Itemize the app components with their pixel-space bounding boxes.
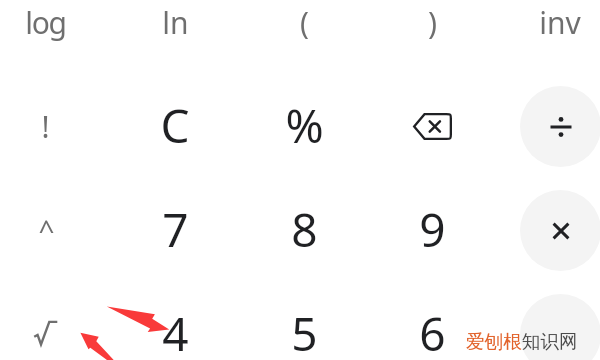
button[interactable]: ln — [111, 0, 239, 74]
staticText: C — [160, 94, 190, 157]
button[interactable]: Divide — [520, 86, 600, 167]
button[interactable]: 5 — [240, 281, 368, 360]
staticText: 爱刨根知识网 — [466, 330, 578, 353]
staticText: 5 — [291, 302, 318, 360]
button[interactable]: 6 — [368, 281, 496, 360]
button[interactable]: ^ — [0, 177, 110, 281]
staticText: ^ — [38, 210, 55, 248]
staticText: 6 — [419, 302, 446, 360]
button[interactable]: Square root — [0, 282, 109, 360]
staticText: ln — [162, 2, 189, 43]
button[interactable]: 8 — [240, 177, 368, 281]
button[interactable]: log — [0, 0, 109, 74]
staticText: % — [285, 94, 324, 157]
button[interactable]: Multiply — [520, 190, 600, 271]
staticText: ! — [41, 106, 50, 147]
button[interactable]: inv — [496, 0, 600, 74]
staticText: 4 — [162, 302, 189, 360]
button[interactable]: ! — [0, 74, 109, 178]
staticText: ) — [428, 2, 437, 43]
staticText: ( — [300, 2, 309, 43]
staticText: 9 — [419, 198, 446, 261]
staticText: 7 — [162, 198, 189, 261]
button[interactable]: 4 — [111, 281, 239, 360]
button[interactable]: ) — [368, 0, 496, 74]
button[interactable]: 9 — [368, 177, 496, 281]
staticText: inv — [539, 2, 581, 43]
staticText: log — [25, 2, 66, 43]
button[interactable]: % — [240, 73, 368, 177]
staticText: 8 — [291, 198, 318, 261]
button[interactable]: Subtract — [520, 294, 600, 360]
button[interactable]: Backspace — [368, 74, 496, 178]
button[interactable]: 7 — [111, 177, 239, 281]
button[interactable]: C — [111, 73, 239, 177]
button[interactable]: ( — [240, 0, 368, 74]
